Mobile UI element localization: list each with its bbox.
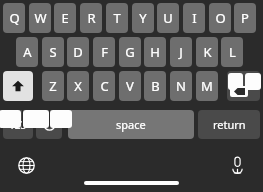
- staticText: V: [126, 77, 134, 95]
- button[interactable]: X: [67, 71, 89, 101]
- staticText: S: [49, 43, 57, 61]
- staticText: J: [179, 43, 183, 61]
- staticText: U: [163, 9, 173, 27]
- button[interactable]: M: [196, 71, 218, 101]
- staticText: B: [151, 77, 160, 95]
- button[interactable]: R: [80, 3, 102, 33]
- button[interactable]: Emoji: [36, 110, 62, 139]
- button[interactable]: space: [68, 110, 194, 139]
- staticText: K: [203, 43, 212, 61]
- staticText: W: [34, 9, 47, 27]
- button[interactable]: H: [144, 37, 166, 67]
- button[interactable]: J: [170, 37, 192, 67]
- button[interactable]: Q: [3, 3, 25, 33]
- staticText: D: [73, 43, 83, 61]
- staticText: M: [201, 77, 213, 95]
- button[interactable]: A: [16, 37, 38, 67]
- staticText: G: [125, 43, 135, 61]
- button[interactable]: 123: [3, 110, 33, 139]
- button[interactable]: N: [170, 71, 192, 101]
- staticText: N: [176, 77, 186, 95]
- button[interactable]: W: [29, 3, 51, 33]
- staticText: F: [101, 43, 108, 61]
- button[interactable]: G: [119, 37, 141, 67]
- staticText: Y: [139, 9, 147, 27]
- staticText: L: [229, 43, 236, 61]
- button[interactable]: L: [221, 37, 243, 67]
- button[interactable]: O: [209, 3, 231, 33]
- staticText: I: [192, 9, 197, 27]
- button[interactable]: return: [198, 110, 260, 139]
- button[interactable]: Y: [132, 3, 154, 33]
- button[interactable]: Dictate: [226, 154, 248, 176]
- button[interactable]: F: [93, 37, 115, 67]
- button[interactable]: P: [234, 3, 256, 33]
- staticText: 123: [9, 118, 27, 132]
- staticText: T: [113, 9, 121, 27]
- staticText: Z: [49, 77, 57, 95]
- staticText: P: [241, 9, 249, 27]
- button[interactable]: Z: [42, 71, 64, 101]
- button[interactable]: K: [196, 37, 218, 67]
- staticText: Q: [9, 9, 20, 27]
- button[interactable]: S: [42, 37, 64, 67]
- staticText: space: [116, 117, 146, 132]
- button[interactable]: U: [157, 3, 179, 33]
- button[interactable]: V: [119, 71, 141, 101]
- staticText: E: [61, 9, 69, 27]
- staticText: H: [150, 43, 160, 61]
- staticText: return: [213, 117, 246, 132]
- staticText: O: [215, 9, 226, 27]
- button[interactable]: B: [144, 71, 166, 101]
- button[interactable]: Shift: [3, 71, 33, 101]
- staticText: A: [23, 43, 32, 61]
- staticText: R: [87, 9, 96, 27]
- button[interactable]: Backspace: [227, 71, 260, 101]
- staticText: X: [74, 77, 82, 95]
- button[interactable]: T: [106, 3, 128, 33]
- button[interactable]: C: [93, 71, 115, 101]
- button[interactable]: Change keyboard language: [15, 154, 37, 176]
- button[interactable]: D: [67, 37, 89, 67]
- button[interactable]: E: [54, 3, 76, 33]
- staticText: C: [100, 77, 109, 95]
- button[interactable]: I: [183, 3, 205, 33]
